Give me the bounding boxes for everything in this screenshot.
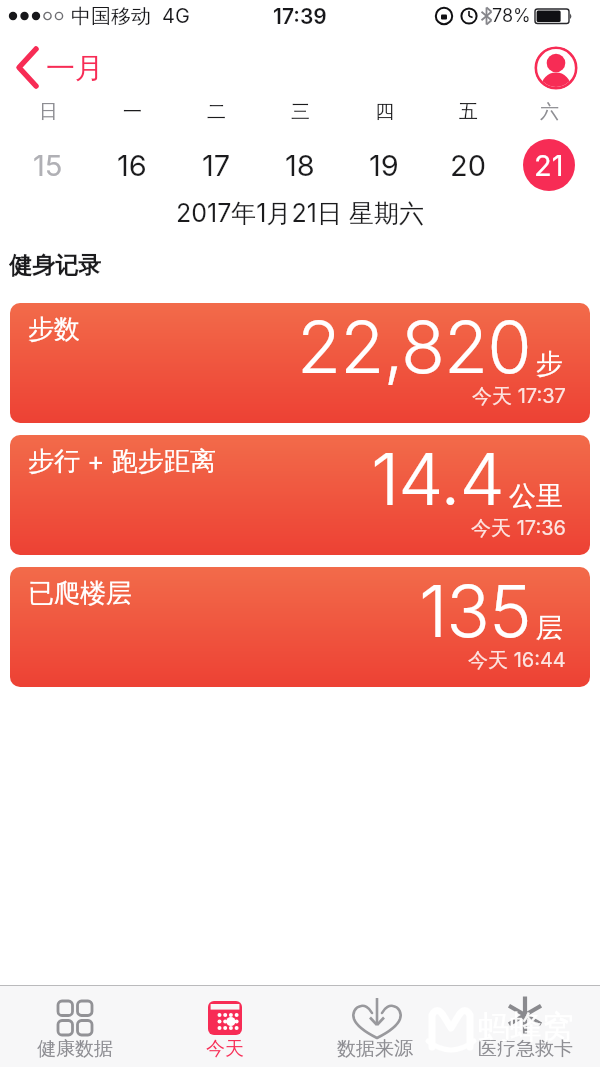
- staticText: 19: [369, 148, 399, 182]
- staticText: 已爬楼层: [28, 577, 132, 609]
- staticText: 21: [534, 148, 564, 183]
- staticText: 公里: [509, 479, 563, 513]
- staticText: 今天 17:36: [471, 516, 566, 541]
- staticText: 层: [536, 611, 563, 645]
- staticText: 步: [536, 347, 563, 381]
- staticText: 六: [540, 100, 559, 124]
- staticText: 135: [419, 567, 531, 654]
- staticText: 今天 17:37: [472, 384, 566, 409]
- staticText: 三: [291, 100, 310, 124]
- staticText: 4G: [162, 4, 190, 28]
- staticText: 18: [285, 148, 315, 182]
- button[interactable]: 数据来源: [300, 985, 450, 1067]
- staticText: 日: [39, 100, 58, 124]
- button[interactable]: 今天: [150, 985, 300, 1067]
- staticText: 78%: [492, 5, 531, 27]
- staticText: 16: [117, 148, 147, 182]
- staticText: 医疗急救卡: [478, 1037, 573, 1061]
- staticText: 健康数据: [37, 1037, 113, 1061]
- staticText: 五: [459, 100, 478, 124]
- staticText: 17: [202, 148, 231, 182]
- button[interactable]: 健康数据: [0, 985, 150, 1067]
- button[interactable]: 已爬楼层: [10, 567, 590, 687]
- staticText: 蚂蜂窝: [478, 1007, 574, 1047]
- staticText: 步数: [28, 313, 80, 345]
- staticText: 14.4: [371, 435, 504, 522]
- button[interactable]: 步数: [10, 303, 590, 423]
- button[interactable]: 一月: [8, 44, 118, 92]
- staticText: 健身记录: [9, 251, 101, 279]
- staticText: 22,820: [297, 303, 531, 390]
- staticText: 数据来源: [337, 1037, 413, 1061]
- staticText: 20: [450, 148, 486, 182]
- staticText: 17:39: [273, 4, 327, 29]
- staticText: 今天: [206, 1037, 244, 1061]
- staticText: 15: [33, 148, 63, 182]
- button[interactable]: [534, 46, 578, 90]
- staticText: 中国移动: [71, 4, 151, 29]
- staticText: 二: [207, 100, 226, 124]
- staticText: 今天 16:44: [468, 648, 566, 673]
- staticText: 一: [123, 100, 142, 124]
- button[interactable]: 步行 + 跑步距离: [10, 435, 590, 555]
- button[interactable]: 21: [523, 139, 575, 191]
- staticText: 四: [375, 100, 394, 124]
- staticText: 2017年1月21日 星期六: [176, 198, 424, 228]
- staticText: 步行 + 跑步距离: [28, 445, 216, 477]
- button[interactable]: 医疗急救卡: [450, 985, 600, 1067]
- staticText: 一月: [46, 50, 104, 87]
